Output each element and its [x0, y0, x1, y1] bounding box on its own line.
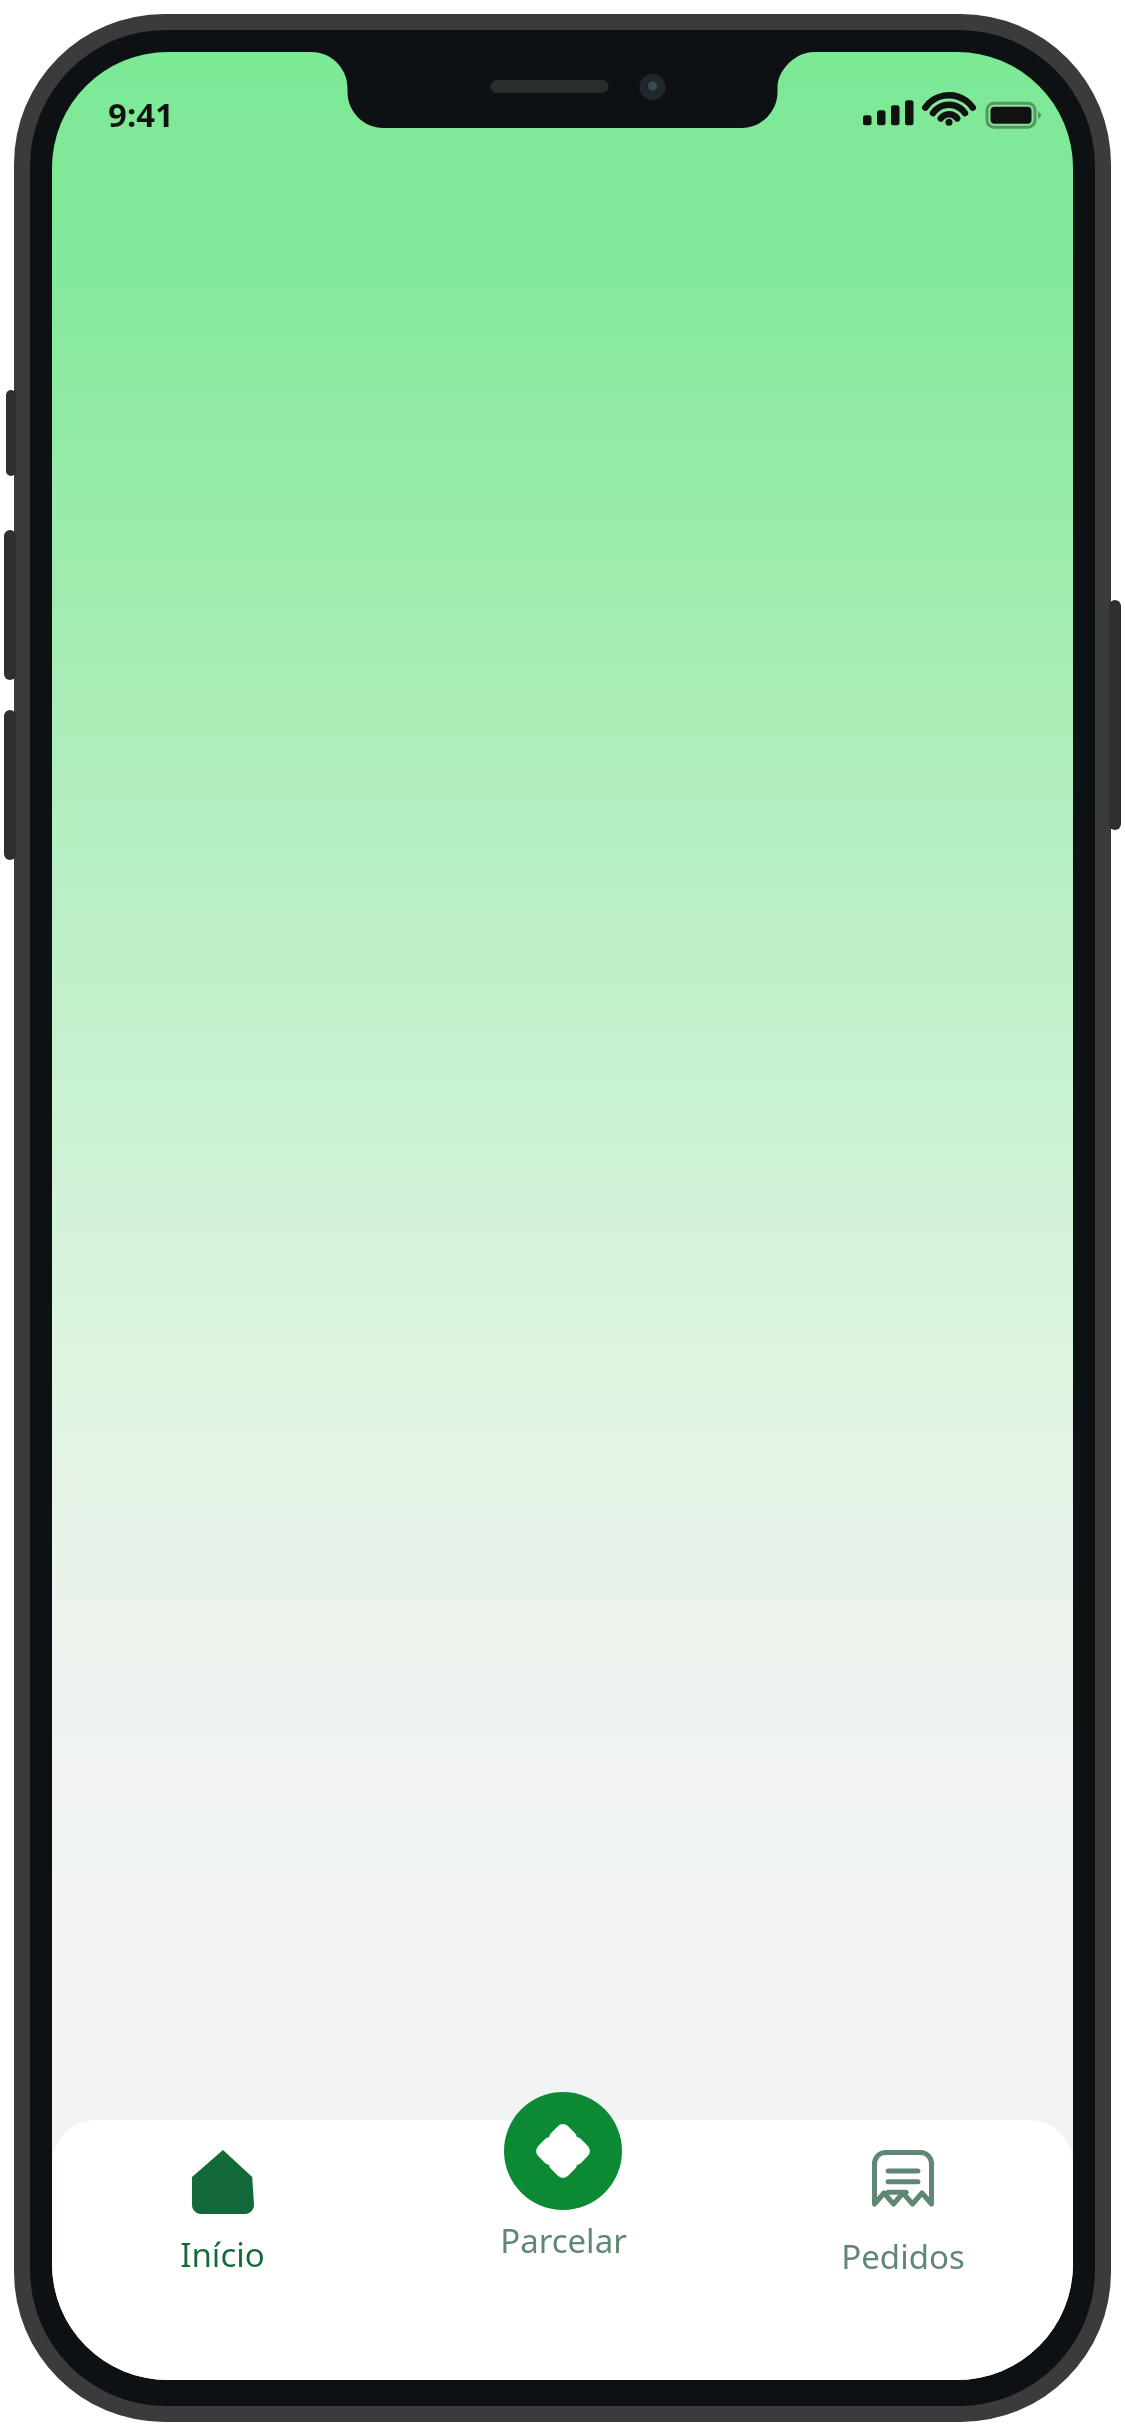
button[interactable]: Início — [52, 2144, 393, 2380]
button[interactable]: Pedidos — [733, 2144, 1073, 2380]
staticText: Início — [180, 2232, 265, 2277]
button[interactable]: Parcelar — [504, 2092, 622, 2210]
staticText: Parcelar — [500, 2218, 627, 2263]
button[interactable]: Parcelar — [393, 2144, 733, 2263]
staticText: Pedidos — [841, 2234, 965, 2279]
staticText: 9:41 — [108, 92, 174, 137]
